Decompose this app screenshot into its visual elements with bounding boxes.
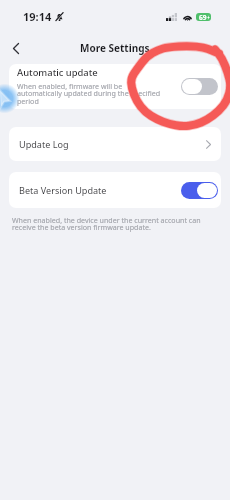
staticText: Update Log (19, 138, 206, 150)
button[interactable]: Toggle off (181, 78, 218, 95)
button[interactable]: Back (5, 37, 27, 59)
staticText: When enabled, firmware will be automatic… (17, 81, 167, 106)
button[interactable]: Toggle on (181, 182, 218, 199)
button[interactable]: Beta Version Update (9, 172, 221, 208)
staticText: 19:14 (23, 9, 52, 24)
staticText: 69 (199, 13, 207, 21)
staticText: More Settings (80, 41, 150, 55)
staticText: Beta Version Update (19, 184, 181, 196)
staticText: When enabled, the device under the curre… (12, 215, 210, 232)
button[interactable]: Automatic update (9, 64, 221, 109)
button[interactable]: Update Log (9, 127, 221, 161)
staticText: Automatic update (17, 66, 98, 79)
